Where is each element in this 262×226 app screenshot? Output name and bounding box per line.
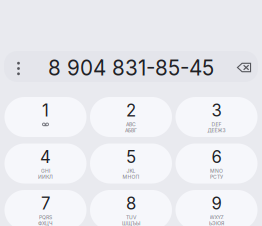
button[interactable]: 4 — [4, 143, 86, 183]
button[interactable]: 2 — [90, 97, 172, 137]
staticText: TUV — [126, 214, 136, 220]
button[interactable]: 3 — [175, 97, 257, 137]
button[interactable]: More options — [4, 53, 32, 84]
staticText: 1 — [42, 100, 49, 121]
staticText: РСТУ — [210, 174, 223, 180]
button[interactable]: 6 — [175, 143, 257, 183]
staticText: АБВГ — [125, 127, 137, 133]
staticText: 8 904 831-85-45 — [48, 55, 214, 80]
staticText: 5 — [126, 147, 136, 167]
staticText: ИЙКЛ — [38, 174, 53, 180]
staticText: ФХЦЧ — [38, 220, 53, 226]
staticText: МНОП — [122, 174, 139, 180]
staticText: 6 — [211, 147, 221, 167]
staticText: GHI — [41, 168, 50, 174]
staticText: 3 — [211, 100, 221, 121]
button[interactable]: 9 — [175, 190, 257, 226]
staticText: JKL — [126, 168, 135, 174]
staticText: ABC — [126, 121, 136, 127]
staticText: MNO — [210, 168, 223, 174]
staticText: 9 — [211, 193, 221, 214]
staticText: ШЩЪЫ — [122, 220, 140, 226]
staticText: PQRS — [39, 214, 52, 220]
staticText: 4 — [40, 147, 51, 167]
staticText: WXYZ — [209, 214, 223, 220]
staticText: DEF — [211, 121, 221, 127]
button[interactable]: 5 — [90, 143, 172, 183]
staticText: 7 — [41, 193, 50, 214]
staticText: 2 — [126, 100, 136, 121]
button[interactable]: 7 — [4, 190, 86, 226]
staticText: ДЕЁЖЗ — [207, 127, 225, 133]
button[interactable]: 1 — [4, 97, 86, 137]
staticText: 8 — [126, 193, 136, 214]
button[interactable]: 8 — [90, 190, 172, 226]
staticText: ЬЭЮЯ — [209, 220, 224, 226]
button[interactable]: Delete — [230, 52, 258, 83]
